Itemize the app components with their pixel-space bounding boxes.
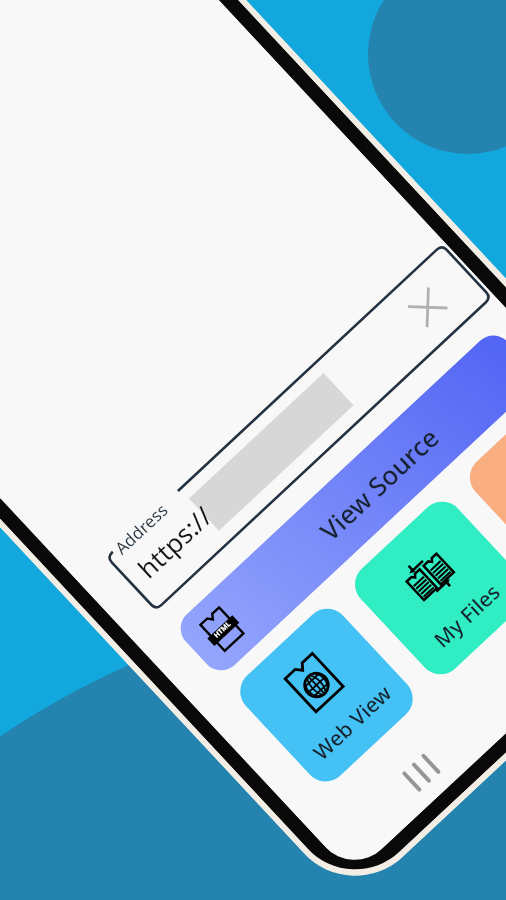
staticText: Address [110,498,173,559]
button[interactable]: My Files [346,492,506,683]
button[interactable]: Web View [231,600,422,790]
button[interactable]: Clear address [406,286,449,328]
button[interactable] [461,385,506,576]
button[interactable]: HTML [172,327,506,679]
staticText: Web View [307,678,398,766]
staticText: https:// [129,498,219,585]
staticText: My Files [428,578,506,654]
staticText: View Source [312,420,446,547]
staticText: HTML [212,619,233,640]
